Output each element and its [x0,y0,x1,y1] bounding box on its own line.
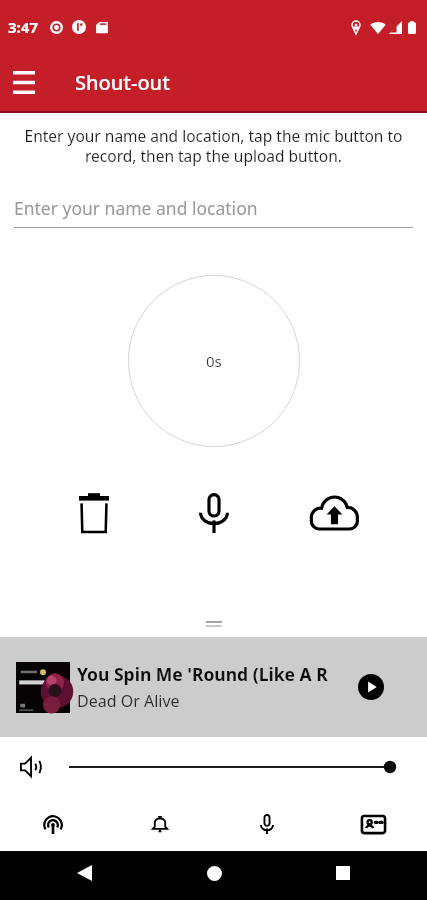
button[interactable]: Notifications [106,797,213,851]
button[interactable]: Upload [274,490,394,536]
staticText: 0s [206,351,222,371]
button[interactable]: Play [356,672,386,702]
button[interactable]: Volume [69,755,396,779]
button[interactable]: Enter your name and location [14,192,413,228]
staticText: Dead Or Alive [77,690,180,712]
button[interactable]: Cast [0,797,106,851]
staticText: 3:47 [8,17,38,37]
button[interactable]: Microphone [213,797,320,851]
button[interactable]: Open navigation menu [1,60,46,105]
staticText: Enter your name and location [14,196,258,220]
button[interactable]: Record [154,490,274,536]
button[interactable]: Delete recording [34,490,154,536]
button[interactable]: Recents [321,851,365,895]
staticText: Enter your name and location, tap the mi… [10,125,417,167]
staticText: Shout-out [75,69,170,96]
button[interactable]: Back [62,851,106,895]
button[interactable]: Home [192,851,236,895]
button[interactable]: Contact card [320,797,427,851]
staticText: You Spin Me 'Round (Like A R [77,662,328,686]
